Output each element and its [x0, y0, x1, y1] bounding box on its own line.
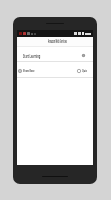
button[interactable]: Start Learning — [17, 47, 93, 61]
staticText: Show Base — [23, 68, 35, 73]
staticText: Quiz — [82, 68, 87, 73]
staticText: Amazon Web Services — [48, 38, 67, 44]
button[interactable]: Quiz — [76, 66, 92, 75]
button[interactable]: Show Base — [17, 66, 46, 75]
button[interactable]: Settings — [79, 51, 87, 59]
staticText: Start Learning — [23, 53, 41, 59]
